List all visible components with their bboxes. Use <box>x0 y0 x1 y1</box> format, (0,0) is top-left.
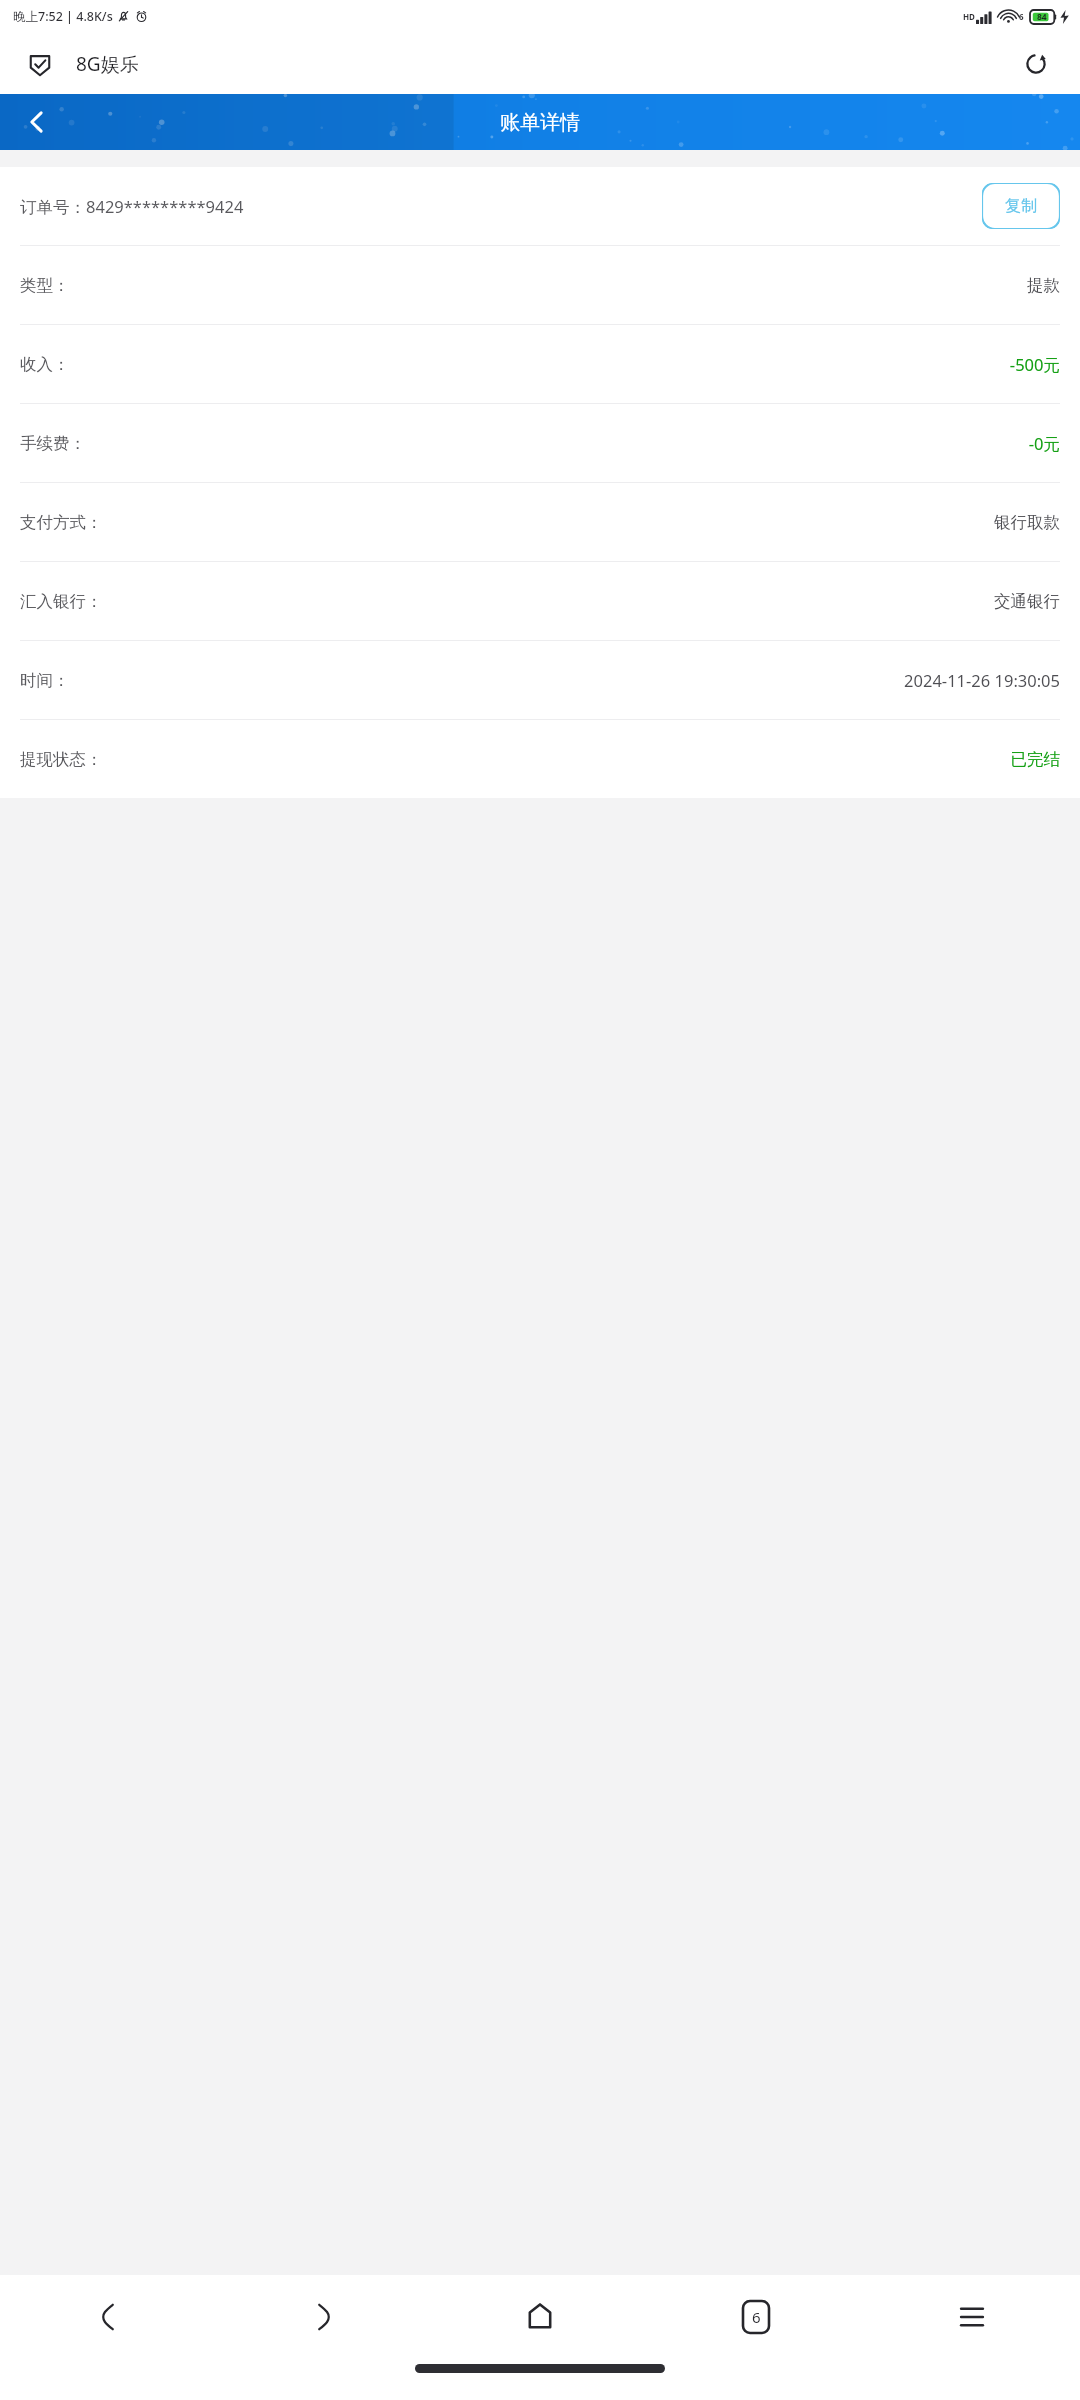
button[interactable]: 类型： <box>0 246 1080 324</box>
button[interactable]: 提现状态： <box>0 720 1080 798</box>
button[interactable]: 支付方式： <box>0 483 1080 561</box>
button[interactable]: Home <box>432 2275 648 2358</box>
button[interactable]: 时间： <box>0 641 1080 719</box>
staticText: 收入： <box>20 354 70 375</box>
staticText: 84 <box>1037 11 1047 23</box>
button[interactable]: Menu <box>864 2275 1080 2358</box>
staticText: 已完结 <box>1010 749 1060 770</box>
staticText: 晚上7:52 | 4.8K/s <box>13 8 113 25</box>
staticText: -500元 <box>1009 353 1060 376</box>
button[interactable]: Secure <box>20 44 60 84</box>
button[interactable]: Tabs <box>648 2275 864 2358</box>
staticText: 手续费： <box>20 433 86 454</box>
button[interactable]: 收入： <box>0 325 1080 403</box>
staticText: 提款 <box>1027 275 1060 296</box>
button[interactable]: 订单号：8429*********9424 <box>0 167 1080 245</box>
button[interactable]: Forward <box>216 2275 432 2358</box>
staticText: 提现状态： <box>20 749 103 770</box>
staticText: 2024-11-26 19:30:05 <box>904 669 1060 691</box>
staticText: HD <box>963 11 975 22</box>
staticText: 银行取款 <box>994 512 1060 533</box>
staticText: 8G娱乐 <box>76 51 139 77</box>
button[interactable]: Refresh <box>1014 42 1058 86</box>
staticText: 账单详情 <box>500 110 580 135</box>
staticText: 类型： <box>20 275 70 296</box>
button[interactable]: 复制 <box>982 183 1060 229</box>
staticText: 6 <box>752 2307 761 2327</box>
staticText: 订单号：8429*********9424 <box>20 195 244 218</box>
button[interactable]: Back <box>0 2275 216 2358</box>
staticText: 6 <box>1019 11 1024 22</box>
staticText: 复制 <box>1005 196 1037 216</box>
staticText: 时间： <box>20 670 70 691</box>
staticText: 支付方式： <box>20 512 103 533</box>
button[interactable]: Back <box>0 94 74 150</box>
staticText: -0元 <box>1028 432 1060 455</box>
button[interactable]: 汇入银行： <box>0 562 1080 640</box>
button[interactable]: 手续费： <box>0 404 1080 482</box>
staticText: 交通银行 <box>994 591 1060 612</box>
staticText: 汇入银行： <box>20 591 103 612</box>
